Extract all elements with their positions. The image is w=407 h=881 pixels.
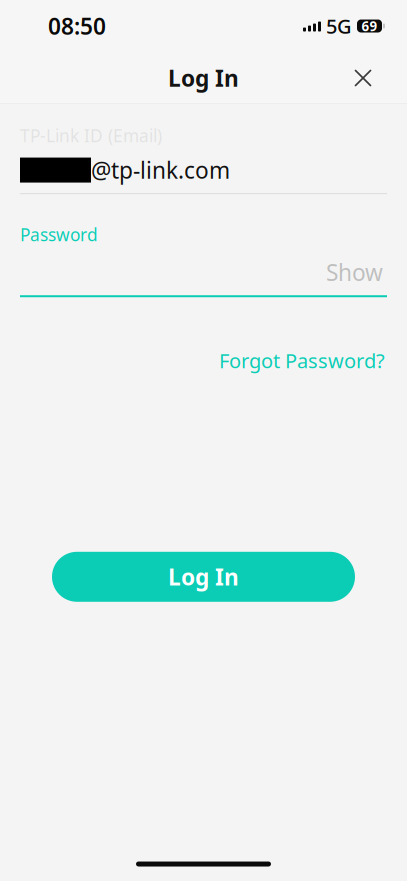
staticText: Forgot Password? (219, 347, 385, 374)
staticText: TP-Link ID (Email) (20, 124, 162, 147)
staticText: 5G (326, 13, 352, 39)
staticText: @tp-link.com (91, 155, 230, 185)
button[interactable]: Show (322, 255, 387, 289)
staticText: Show (326, 257, 383, 287)
button[interactable]: Forgot Password? (217, 341, 387, 380)
button[interactable]: Log In (52, 552, 355, 602)
staticText: Password (20, 223, 98, 246)
staticText: Log In (168, 63, 239, 93)
staticText: Log In (168, 562, 239, 592)
staticText: 69 (361, 17, 377, 35)
button[interactable]: Close (341, 56, 385, 100)
staticText: 08:50 (48, 11, 106, 41)
